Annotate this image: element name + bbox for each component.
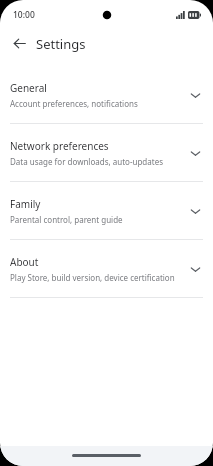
staticText: Settings <box>36 35 86 53</box>
staticText: 10:00 <box>13 9 35 21</box>
staticText: Parental control, parent guide <box>10 214 123 225</box>
staticText: Network preferences <box>10 139 109 153</box>
button[interactable]: Back <box>6 30 33 57</box>
staticText: Family <box>10 197 41 211</box>
button[interactable]: About <box>0 240 213 297</box>
staticText: Account preferences, notifications <box>10 98 138 109</box>
staticText: Data usage for downloads, auto-updates <box>10 156 163 167</box>
button[interactable]: Family <box>0 182 213 239</box>
button[interactable]: Network preferences <box>0 124 213 181</box>
staticText: About <box>10 255 39 269</box>
button[interactable]: General <box>0 66 213 123</box>
staticText: General <box>10 81 47 95</box>
staticText: Play Store, build version, device certif… <box>10 272 175 283</box>
